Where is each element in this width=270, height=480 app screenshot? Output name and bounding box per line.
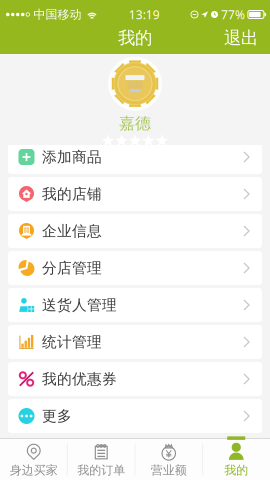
staticText: 嘉德 (119, 114, 151, 133)
button[interactable]: 退出 (214, 25, 270, 50)
button[interactable]: 企业信息 (8, 214, 262, 248)
staticText: 我的优惠券 (42, 370, 117, 388)
staticText: 我的订单 (77, 463, 125, 478)
staticText: 统计管理 (42, 333, 102, 351)
staticText: 添加商品 (42, 148, 102, 166)
staticText: 退出 (224, 27, 258, 49)
staticText: 我的店铺 (42, 185, 102, 203)
button[interactable]: 我的订单 (67, 439, 135, 480)
staticText: 营业额 (151, 463, 187, 478)
staticText: 我的 (224, 463, 248, 478)
button[interactable]: 更多 (8, 399, 262, 433)
button[interactable]: 身边买家 (0, 439, 67, 480)
staticText: 中国移动 (33, 7, 81, 22)
staticText: 身边买家 (10, 463, 58, 478)
staticText: 分店管理 (42, 259, 102, 277)
staticText: 企业信息 (42, 222, 102, 240)
button[interactable]: 添加商品 (8, 140, 262, 174)
staticText: 更多 (42, 407, 72, 425)
button[interactable]: 我的店铺 (8, 177, 262, 211)
button[interactable]: 送货人管理 (8, 288, 262, 322)
staticText: 我的 (118, 27, 152, 49)
button[interactable]: 分店管理 (8, 251, 262, 285)
button[interactable]: 统计管理 (8, 325, 262, 359)
button[interactable]: 我的优惠券 (8, 362, 262, 396)
button[interactable]: 营业额 (135, 439, 202, 480)
staticText: 77% (221, 6, 245, 22)
staticText: 13:19 (129, 6, 160, 22)
button[interactable]: 我的 (202, 439, 270, 480)
staticText: 送货人管理 (42, 296, 117, 314)
